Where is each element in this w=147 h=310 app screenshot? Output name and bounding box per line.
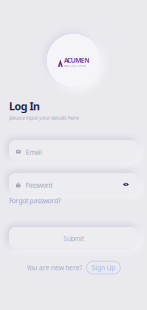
staticText: Forgot password?: [9, 196, 61, 205]
staticText: Password: [25, 181, 53, 190]
staticText: Sign Up: [91, 263, 115, 272]
staticText: Log In: [9, 99, 40, 113]
button[interactable]: Password: [9, 173, 138, 193]
staticText: please input your details here: [9, 114, 79, 121]
button[interactable]: Email: [9, 140, 138, 160]
staticText: Submit: [63, 234, 84, 243]
button[interactable]: Submit: [9, 227, 138, 248]
staticText: MEDICAL CENTER: [64, 64, 86, 68]
staticText: Email: [26, 148, 42, 157]
button[interactable]: Sign Up: [86, 261, 120, 274]
staticText: ACUMEN: [64, 56, 89, 65]
button[interactable]: Forgot password?: [9, 193, 138, 205]
staticText: You are new here?: [27, 263, 82, 272]
